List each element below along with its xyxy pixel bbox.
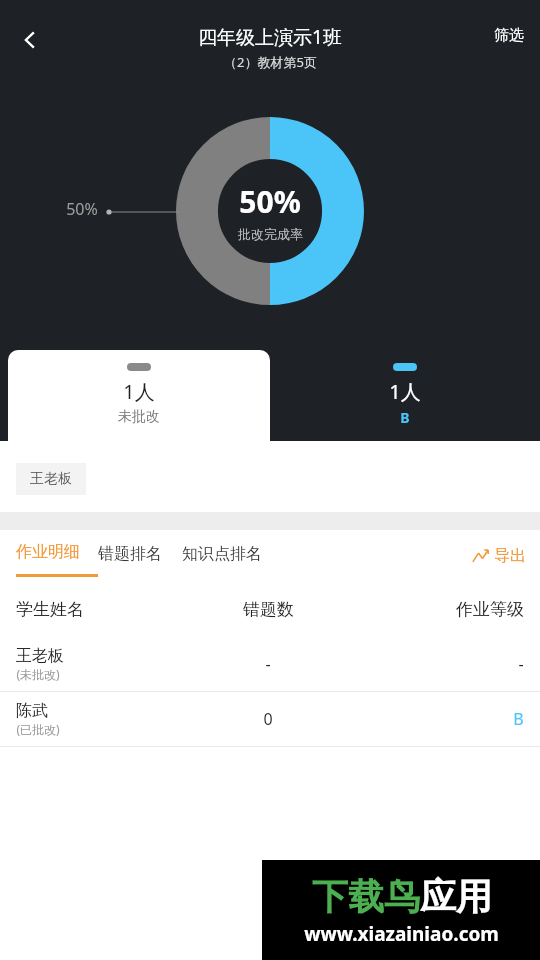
button[interactable]: 王老板 — [16, 463, 86, 495]
staticText: 作业明细 — [16, 542, 80, 562]
button[interactable]: Back — [6, 16, 54, 64]
button[interactable]: 1人 — [270, 350, 540, 441]
button[interactable]: 1人 — [8, 350, 270, 441]
button[interactable]: 导出 — [458, 536, 540, 576]
staticText: 未批改 — [118, 408, 160, 426]
staticText: （2）教材第5页 — [224, 53, 317, 71]
staticText: 下载鸟 — [312, 874, 420, 919]
staticText: B — [513, 708, 524, 730]
staticText: 错题数 — [243, 599, 294, 620]
button[interactable]: 作业明细 — [0, 530, 88, 578]
button[interactable]: 陈武 — [0, 692, 540, 746]
staticText: 0 — [263, 708, 273, 730]
button[interactable]: 错题排名 — [88, 532, 172, 576]
staticText: 导出 — [494, 546, 526, 566]
staticText: 王老板 — [16, 646, 64, 666]
staticText: - — [265, 653, 271, 675]
staticText: (未批改) — [16, 666, 60, 682]
staticText: 错题排名 — [98, 544, 162, 564]
staticText: 陈武 — [16, 701, 48, 721]
staticText: 批改完成率 — [238, 226, 303, 242]
staticText: 作业等级 — [456, 599, 524, 620]
staticText: - — [518, 653, 524, 675]
staticText: 1人 — [389, 378, 421, 405]
staticText: (已批改) — [16, 721, 60, 737]
staticText: 王老板 — [30, 470, 72, 488]
staticText: 50% — [66, 198, 98, 220]
staticText: 1人 — [123, 378, 155, 405]
staticText: 学生姓名 — [16, 599, 84, 620]
staticText: 50% — [239, 181, 301, 222]
button[interactable]: 筛选 — [478, 18, 540, 53]
staticText: 筛选 — [494, 26, 524, 45]
staticText: 四年级上演示1班 — [198, 24, 342, 50]
staticText: 应用 — [420, 874, 492, 919]
button[interactable]: 王老板 — [0, 637, 540, 691]
staticText: 知识点排名 — [182, 544, 262, 564]
staticText: B — [400, 408, 410, 427]
button[interactable]: 知识点排名 — [172, 532, 272, 576]
staticText: www.xiazainiao.com — [304, 921, 499, 947]
